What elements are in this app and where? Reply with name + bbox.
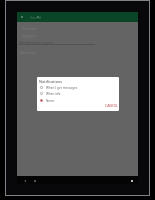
staticText: General (22, 26, 37, 31)
button[interactable]: Never (37, 97, 119, 104)
button[interactable]: CANCEL (104, 102, 119, 109)
staticText: When I get messages (46, 86, 78, 90)
button[interactable]: Back (21, 177, 28, 184)
staticText: Sound (30, 15, 42, 20)
button[interactable]: When I get messages (37, 84, 119, 91)
staticText: CANCEL (105, 103, 118, 108)
staticText: When idle (46, 92, 61, 96)
staticText: Notification sound (19, 40, 53, 45)
button[interactable]: Recents (128, 177, 135, 184)
staticText: Never (46, 99, 55, 103)
staticText: Notifications (39, 79, 63, 84)
button[interactable]: When idle (37, 90, 119, 97)
button[interactable]: Home (31, 177, 38, 184)
button[interactable]: Navigate up (20, 15, 24, 19)
staticText: Messages (20, 50, 37, 55)
staticText: Ringtone (22, 33, 37, 38)
button[interactable]: More options (36, 15, 40, 19)
